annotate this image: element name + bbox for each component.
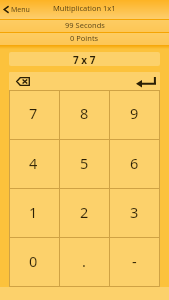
- button[interactable]: 4: [9, 140, 60, 189]
- staticText: .: [82, 251, 86, 271]
- button[interactable]: 3: [110, 189, 160, 238]
- staticText: 7 x 7: [73, 53, 96, 66]
- staticText: 3: [130, 202, 139, 222]
- button[interactable]: -: [110, 238, 160, 287]
- staticText: 2: [80, 202, 89, 222]
- button[interactable]: 8: [60, 90, 110, 140]
- button[interactable]: 7: [9, 90, 60, 140]
- staticText: Menu: [11, 5, 30, 15]
- button[interactable]: 5: [60, 140, 110, 189]
- staticText: Multiplication 1x1: [53, 3, 116, 13]
- staticText: 1: [29, 202, 38, 222]
- button[interactable]: 1: [9, 189, 60, 238]
- staticText: 0 Points: [70, 33, 99, 43]
- staticText: 99 Seconds: [65, 20, 105, 30]
- button[interactable]: Menu: [0, 0, 36, 19]
- button[interactable]: Enter: [132, 72, 160, 90]
- staticText: -: [132, 251, 137, 271]
- staticText: 6: [130, 153, 139, 173]
- staticText: 0: [29, 251, 38, 271]
- button[interactable]: 9: [110, 90, 160, 140]
- button[interactable]: 2: [60, 189, 110, 238]
- button[interactable]: .: [60, 238, 110, 287]
- button[interactable]: Backspace: [9, 72, 35, 90]
- staticText: 4: [29, 153, 38, 173]
- staticText: 7: [29, 103, 38, 123]
- staticText: 5: [80, 153, 89, 173]
- button[interactable]: 0: [9, 238, 60, 287]
- staticText: 9: [130, 103, 139, 123]
- staticText: 8: [80, 103, 89, 123]
- button[interactable]: 6: [110, 140, 160, 189]
